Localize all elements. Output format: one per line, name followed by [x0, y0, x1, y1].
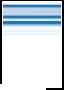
button[interactable]: List item one	[3, 8, 61, 10]
button[interactable]: List item two	[3, 11, 61, 13]
